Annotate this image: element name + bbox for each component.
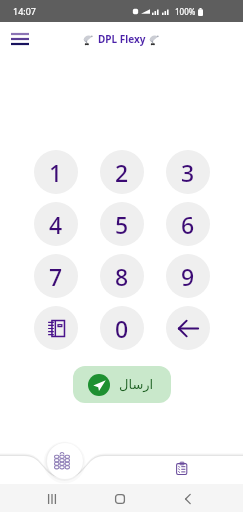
button[interactable]: Dialpad	[47, 443, 83, 479]
staticText: 5	[115, 209, 129, 240]
staticText: 1	[49, 157, 63, 188]
button[interactable]: 9	[166, 254, 210, 298]
staticText: ارسال	[119, 377, 154, 392]
staticText: 7	[49, 261, 63, 292]
button[interactable]: Back	[180, 491, 196, 507]
button[interactable]: 2	[100, 150, 144, 194]
button[interactable]: Contacts	[34, 306, 78, 350]
staticText: 4	[49, 209, 63, 240]
staticText: 8	[115, 261, 129, 292]
button[interactable]: Reports	[172, 458, 192, 478]
staticText: 6	[181, 209, 195, 240]
staticText: 3	[181, 157, 195, 188]
button[interactable]: 7	[34, 254, 78, 298]
staticText: DPL Flexy	[98, 32, 146, 46]
button[interactable]: ارسال	[73, 366, 171, 403]
button[interactable]: Home	[112, 491, 128, 507]
button[interactable]: 8	[100, 254, 144, 298]
button[interactable]: 6	[166, 202, 210, 246]
button[interactable]: 0	[100, 306, 144, 350]
staticText: 14:07	[13, 5, 37, 17]
staticText: 0	[115, 313, 129, 344]
button[interactable]: Recents	[44, 491, 60, 507]
staticText: 9	[181, 261, 195, 292]
staticText: 100%	[175, 6, 196, 17]
staticText: 2	[115, 157, 129, 188]
button[interactable]: 5	[100, 202, 144, 246]
button[interactable]: 3	[166, 150, 210, 194]
button[interactable]: 4	[34, 202, 78, 246]
button[interactable]: Backspace	[166, 306, 210, 350]
button[interactable]: 1	[34, 150, 78, 194]
button[interactable]: Menu	[10, 31, 30, 47]
